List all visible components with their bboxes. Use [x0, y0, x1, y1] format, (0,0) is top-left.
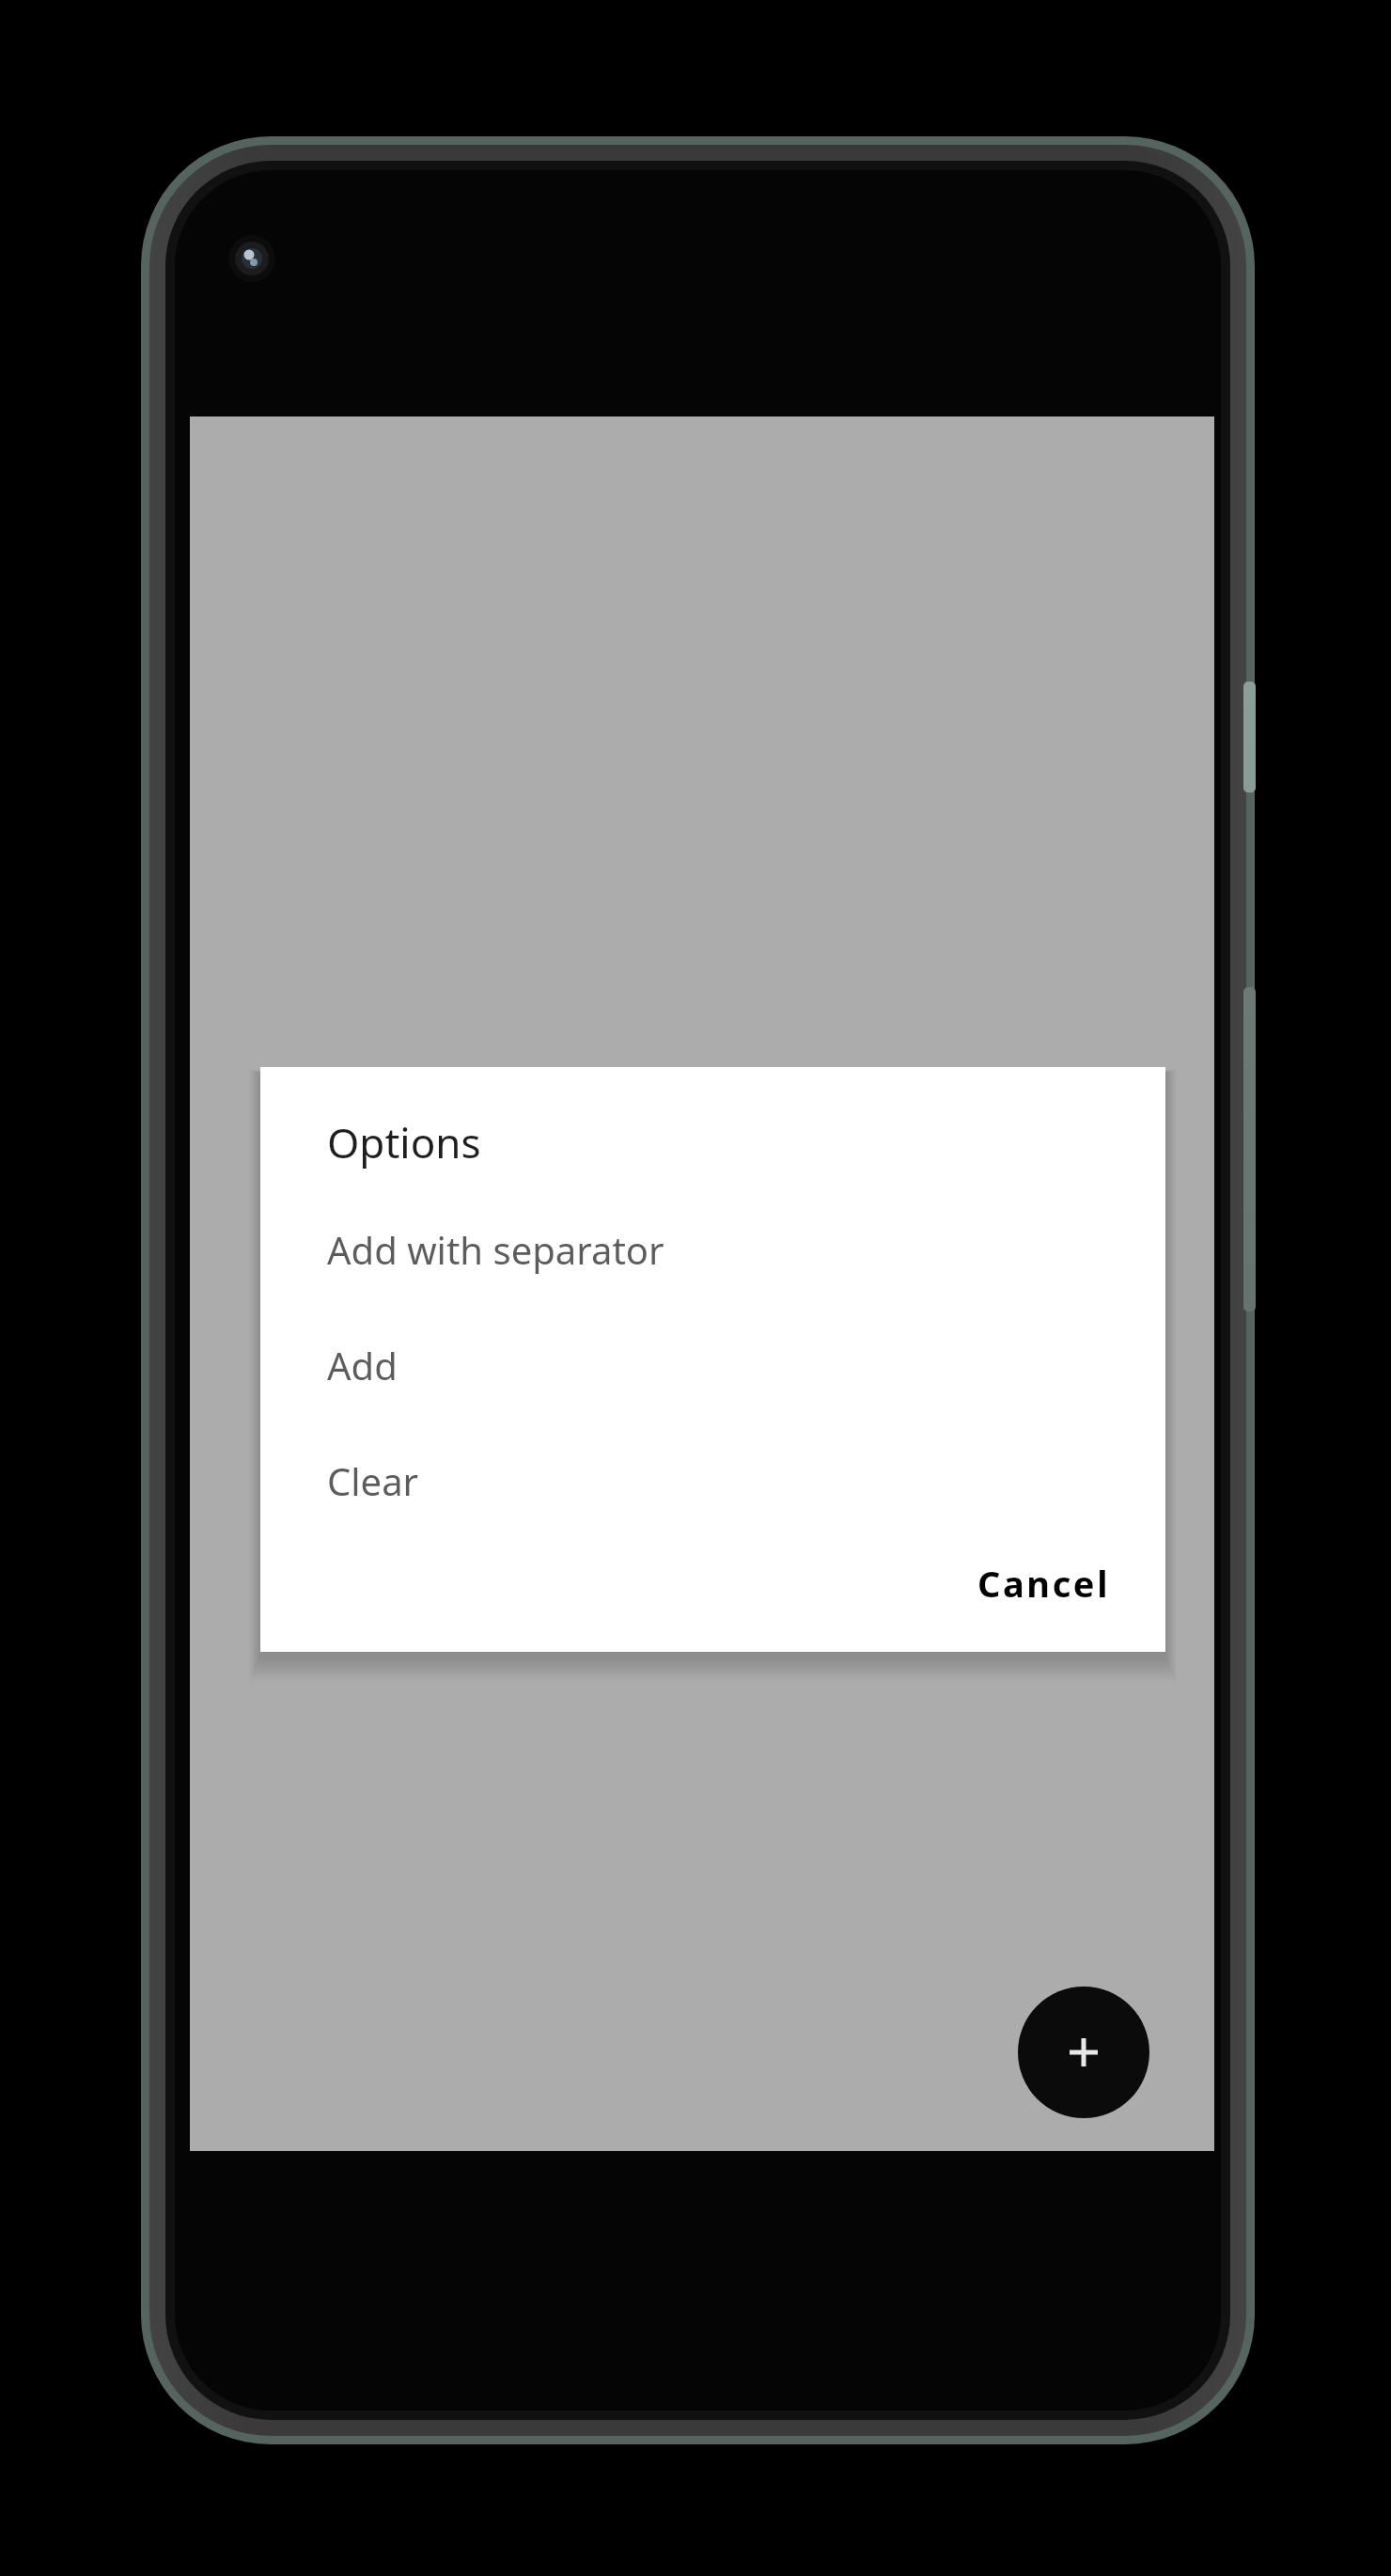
button[interactable]: Add	[1018, 1987, 1149, 2118]
button[interactable]: Add	[260, 1322, 1165, 1408]
staticText: Add with separator	[327, 1224, 664, 1275]
button[interactable]: Clear	[260, 1437, 1165, 1524]
button[interactable]: Cancel	[977, 1543, 1165, 1624]
staticText: Options	[327, 1114, 481, 1170]
staticText: Cancel	[977, 1559, 1111, 1608]
button[interactable]: Add with separator	[260, 1206, 1165, 1293]
staticText: Add	[327, 1340, 398, 1390]
staticText: Clear	[327, 1455, 419, 1506]
